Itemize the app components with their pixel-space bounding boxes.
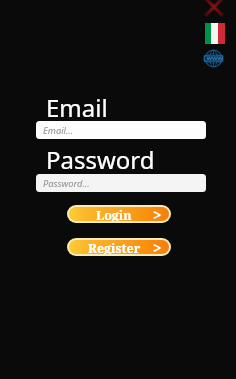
button[interactable]: Password... (36, 174, 206, 192)
staticText: Password (46, 143, 155, 176)
button[interactable]: Login (69, 207, 169, 221)
button[interactable]: Register (69, 240, 169, 254)
button[interactable]: Close (203, 0, 225, 18)
button[interactable]: Website (204, 49, 223, 68)
staticText: Register (88, 240, 141, 254)
staticText: Login (96, 207, 132, 221)
button[interactable]: Email... (36, 121, 206, 139)
staticText: Password... (43, 177, 90, 190)
staticText: Email... (43, 124, 74, 137)
button[interactable]: Language: Italian (205, 23, 225, 44)
staticText: Email (46, 91, 108, 124)
